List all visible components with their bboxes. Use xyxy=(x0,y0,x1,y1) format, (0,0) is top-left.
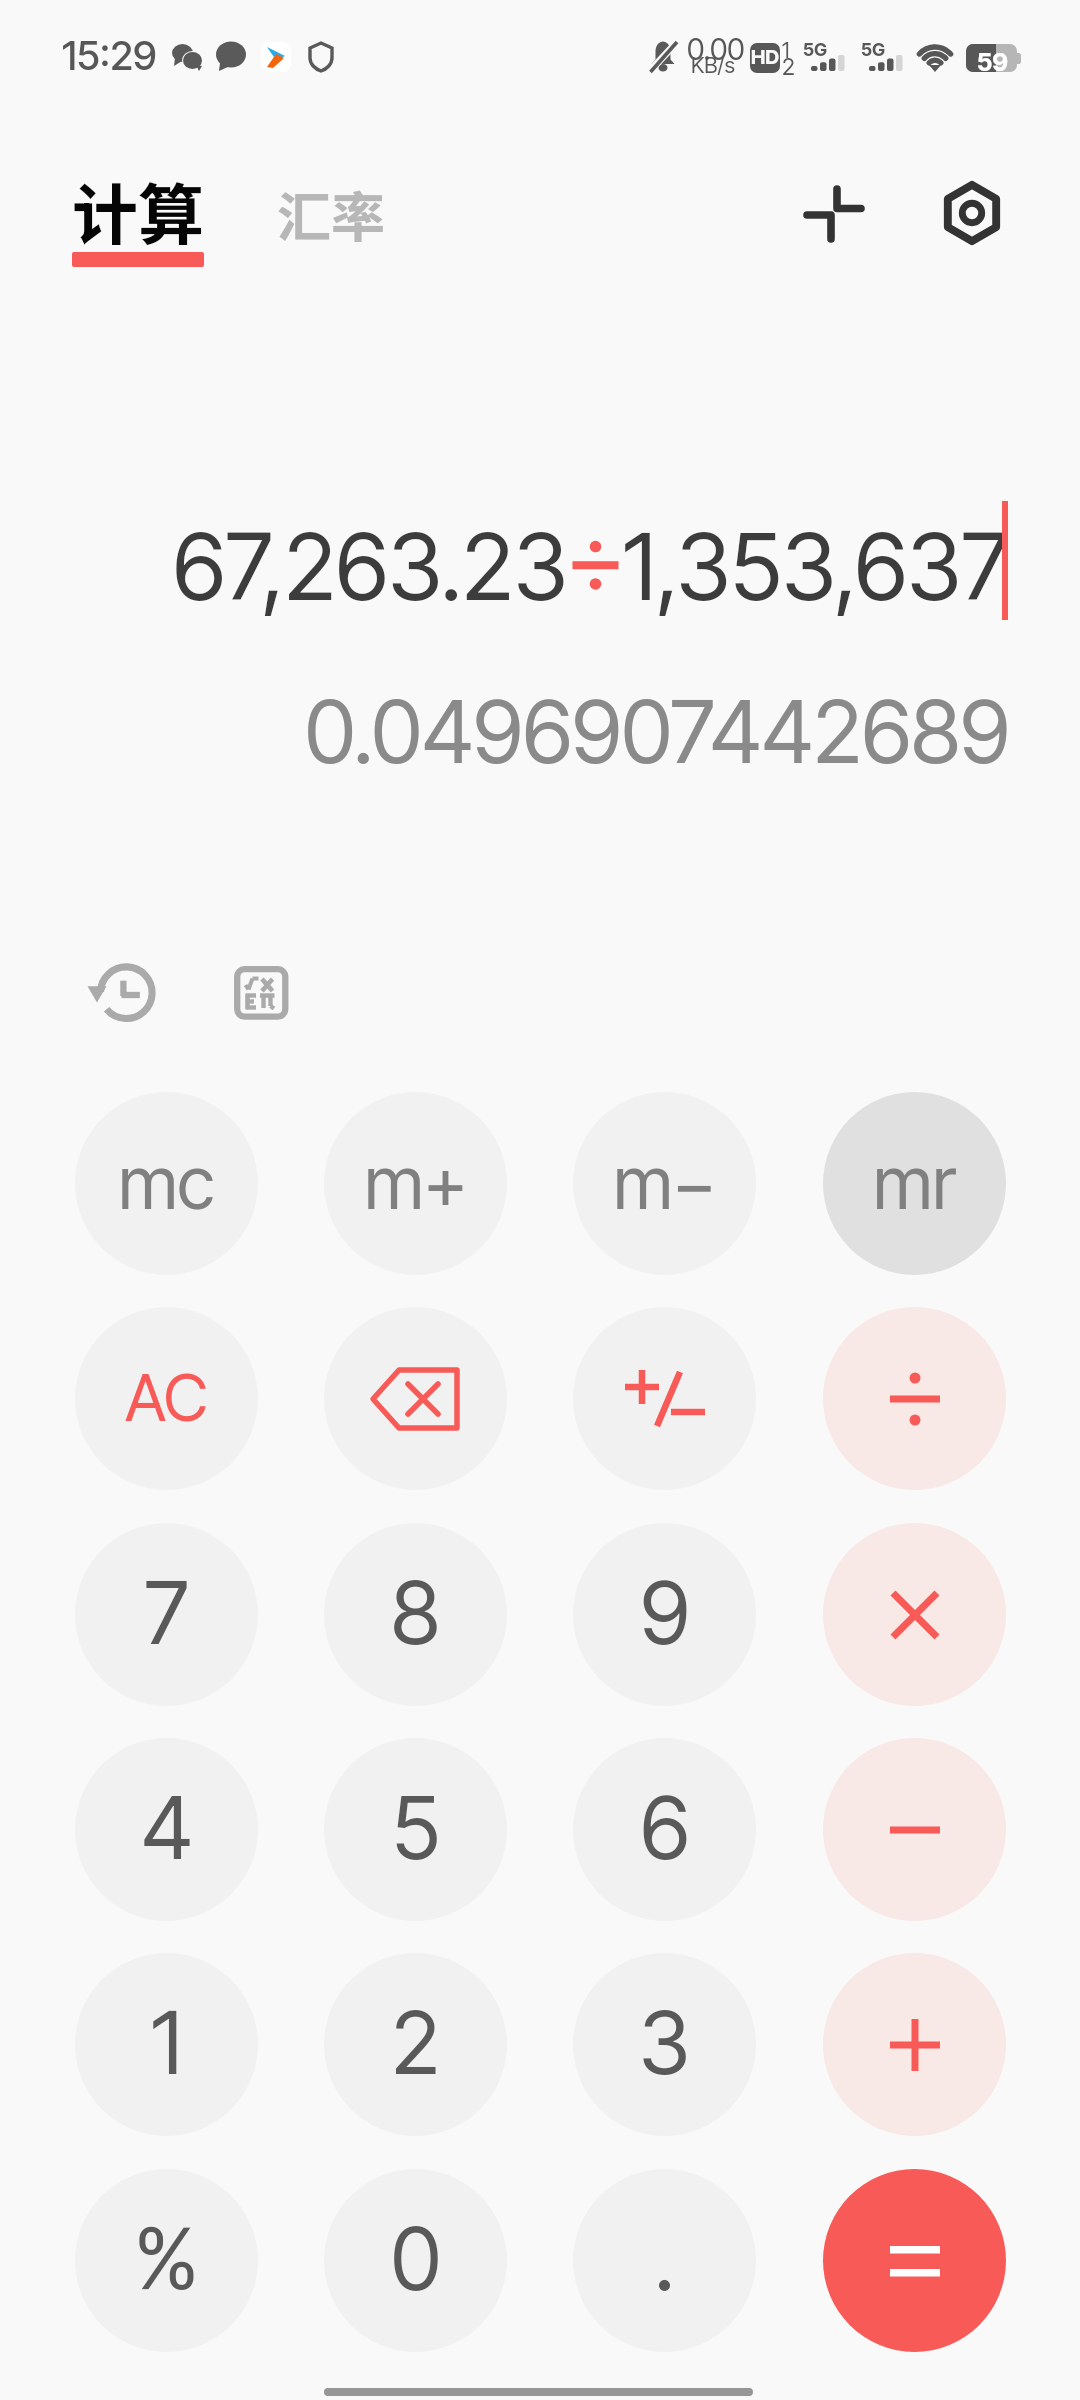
staticText: 1,353,637 xyxy=(623,511,1009,622)
button[interactable]: 9 xyxy=(573,1523,756,1706)
staticText: HD xyxy=(751,45,780,69)
staticText: 9 xyxy=(640,1560,690,1664)
button[interactable]: Toggle sign xyxy=(573,1307,756,1490)
button[interactable]: Divide xyxy=(823,1307,1006,1490)
button[interactable]: mr xyxy=(823,1092,1006,1275)
staticText: mc xyxy=(118,1139,215,1226)
staticText: 汇率 xyxy=(277,174,385,252)
staticText: 8 xyxy=(391,1560,440,1664)
staticText: 5 xyxy=(392,1775,440,1879)
button[interactable]: 0 xyxy=(324,2169,507,2352)
staticText: % xyxy=(134,2208,199,2310)
button[interactable]: 汇率 xyxy=(262,160,402,270)
staticText: m+ xyxy=(364,1139,468,1226)
staticText: AC xyxy=(125,1359,208,1437)
staticText: 0.00 xyxy=(687,31,745,67)
button[interactable]: AC xyxy=(75,1307,258,1490)
button[interactable]: Switch keypad layout xyxy=(785,164,885,264)
staticText: 4 xyxy=(141,1775,193,1879)
staticText: 59 xyxy=(977,47,1009,77)
button[interactable]: 2 xyxy=(324,1953,507,2136)
button[interactable]: 8 xyxy=(324,1523,507,1706)
staticText: m− xyxy=(613,1139,717,1226)
button[interactable]: 计算 xyxy=(56,160,222,280)
staticText: 3 xyxy=(639,1990,690,2094)
staticText: 计算 xyxy=(72,162,204,258)
button[interactable]: History xyxy=(78,943,178,1043)
button[interactable]: Add xyxy=(823,1953,1006,2136)
button[interactable]: 4 xyxy=(75,1738,258,1921)
button[interactable]: m− xyxy=(573,1092,756,1275)
button[interactable]: Subtract xyxy=(823,1738,1006,1921)
staticText: 5G xyxy=(861,39,886,61)
button[interactable]: Settings xyxy=(922,163,1022,263)
button[interactable]: Backspace xyxy=(324,1307,507,1490)
button[interactable]: 5 xyxy=(324,1738,507,1921)
staticText: 67,263.23 xyxy=(173,511,568,622)
staticText: 2 xyxy=(391,1990,440,2094)
staticText: mr xyxy=(873,1139,956,1226)
staticText: 5G xyxy=(803,39,828,61)
staticText: 7 xyxy=(144,1560,189,1664)
button[interactable]: 1 xyxy=(75,1953,258,2136)
staticText: 0 xyxy=(391,2206,441,2310)
button[interactable]: 3 xyxy=(573,1953,756,2136)
button[interactable]: Scientific calculator xyxy=(211,943,311,1043)
staticText: 1 xyxy=(782,38,790,63)
button[interactable]: 6 xyxy=(573,1738,756,1921)
button[interactable]: Equals xyxy=(823,2169,1006,2352)
staticText: 6 xyxy=(640,1775,690,1879)
button[interactable]: mc xyxy=(75,1092,258,1275)
staticText: 0.0496907442689 xyxy=(305,679,1010,784)
button[interactable]: Multiply xyxy=(823,1523,1006,1706)
button[interactable]: . xyxy=(573,2169,756,2352)
staticText: . xyxy=(654,2206,675,2310)
staticText: KB/s xyxy=(691,52,735,79)
button[interactable]: m+ xyxy=(324,1092,507,1275)
staticText: 1 xyxy=(151,1990,182,2094)
staticText: 15:29 xyxy=(62,31,157,79)
staticText: 2 xyxy=(782,53,795,81)
button[interactable]: % xyxy=(75,2169,258,2352)
button[interactable]: 7 xyxy=(75,1523,258,1706)
